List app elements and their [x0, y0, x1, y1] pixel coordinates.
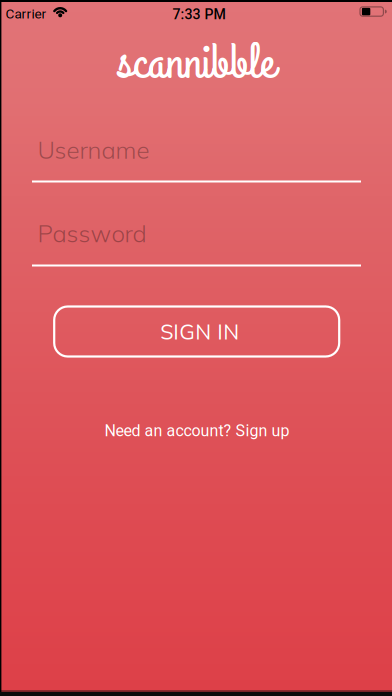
button[interactable]: Need an account? Sign up [1, 421, 392, 440]
button[interactable]: Password [37, 211, 359, 255]
staticText: SIGN IN [160, 318, 239, 345]
staticText: Password [37, 218, 146, 248]
staticText: Need an account? Sign up [104, 421, 289, 440]
staticText: scannibble [117, 29, 275, 98]
button[interactable]: Username [37, 128, 359, 172]
button[interactable]: SIGN IN [54, 306, 339, 356]
staticText: Username [37, 134, 149, 165]
staticText: Carrier [5, 6, 46, 22]
staticText: 7:33 PM [172, 6, 225, 23]
